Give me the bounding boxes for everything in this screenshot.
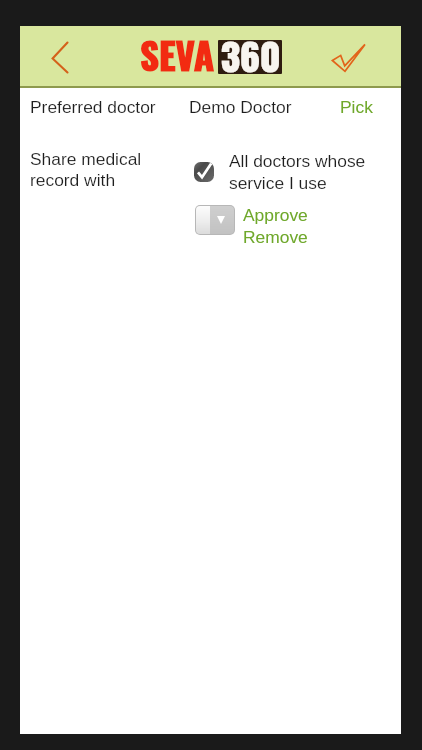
- button[interactable]: All doctors whose: [194, 158, 366, 191]
- staticText: SEVA: [140, 27, 215, 82]
- staticText: 360: [221, 28, 281, 83]
- staticText: Preferred doctor: [30, 97, 156, 116]
- button[interactable]: Approve: [238, 202, 313, 227]
- button[interactable]: Confirm: [326, 36, 374, 76]
- button[interactable]: Choose sharing action: [196, 206, 234, 234]
- staticText: All doctors whose: [229, 151, 366, 170]
- staticText: service I use: [229, 173, 327, 192]
- button[interactable]: Pick: [330, 89, 383, 124]
- staticText: record with: [30, 170, 116, 189]
- staticText: Demo Doctor: [189, 97, 292, 116]
- staticText: Pick: [340, 97, 373, 116]
- staticText: Share medical: [30, 149, 142, 168]
- staticText: Remove: [243, 227, 308, 246]
- button[interactable]: Back: [42, 32, 78, 80]
- button[interactable]: Remove: [238, 224, 313, 249]
- staticText: Approve: [243, 205, 308, 224]
